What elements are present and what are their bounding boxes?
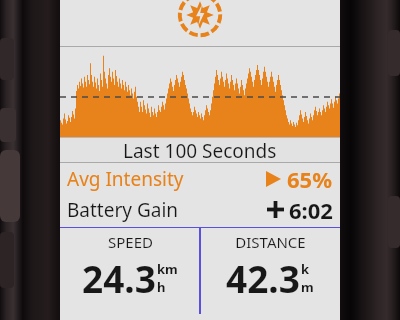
button[interactable]: Avg Intensity: [60, 163, 340, 194]
staticText: Battery Gain: [67, 197, 179, 223]
staticText: k: [301, 260, 310, 278]
staticText: 42.3: [226, 253, 300, 303]
staticText: Last 100 Seconds: [123, 138, 277, 162]
staticText: Avg Intensity: [67, 166, 184, 192]
staticText: SPEED: [108, 232, 153, 252]
button[interactable]: DISTANCE: [200, 227, 340, 314]
staticText: 65%: [287, 164, 333, 194]
button[interactable]: SPEED: [60, 227, 200, 314]
staticText: h: [157, 278, 166, 296]
button[interactable]: Last 100 Seconds: [60, 138, 340, 162]
staticText: 6:02: [289, 195, 333, 225]
staticText: km: [157, 260, 178, 278]
button[interactable]: Battery Gain: [60, 194, 340, 225]
staticText: 24.3: [82, 253, 156, 303]
staticText: m: [301, 278, 314, 296]
other: Solar charging: [168, 0, 232, 38]
staticText: DISTANCE: [235, 232, 306, 252]
